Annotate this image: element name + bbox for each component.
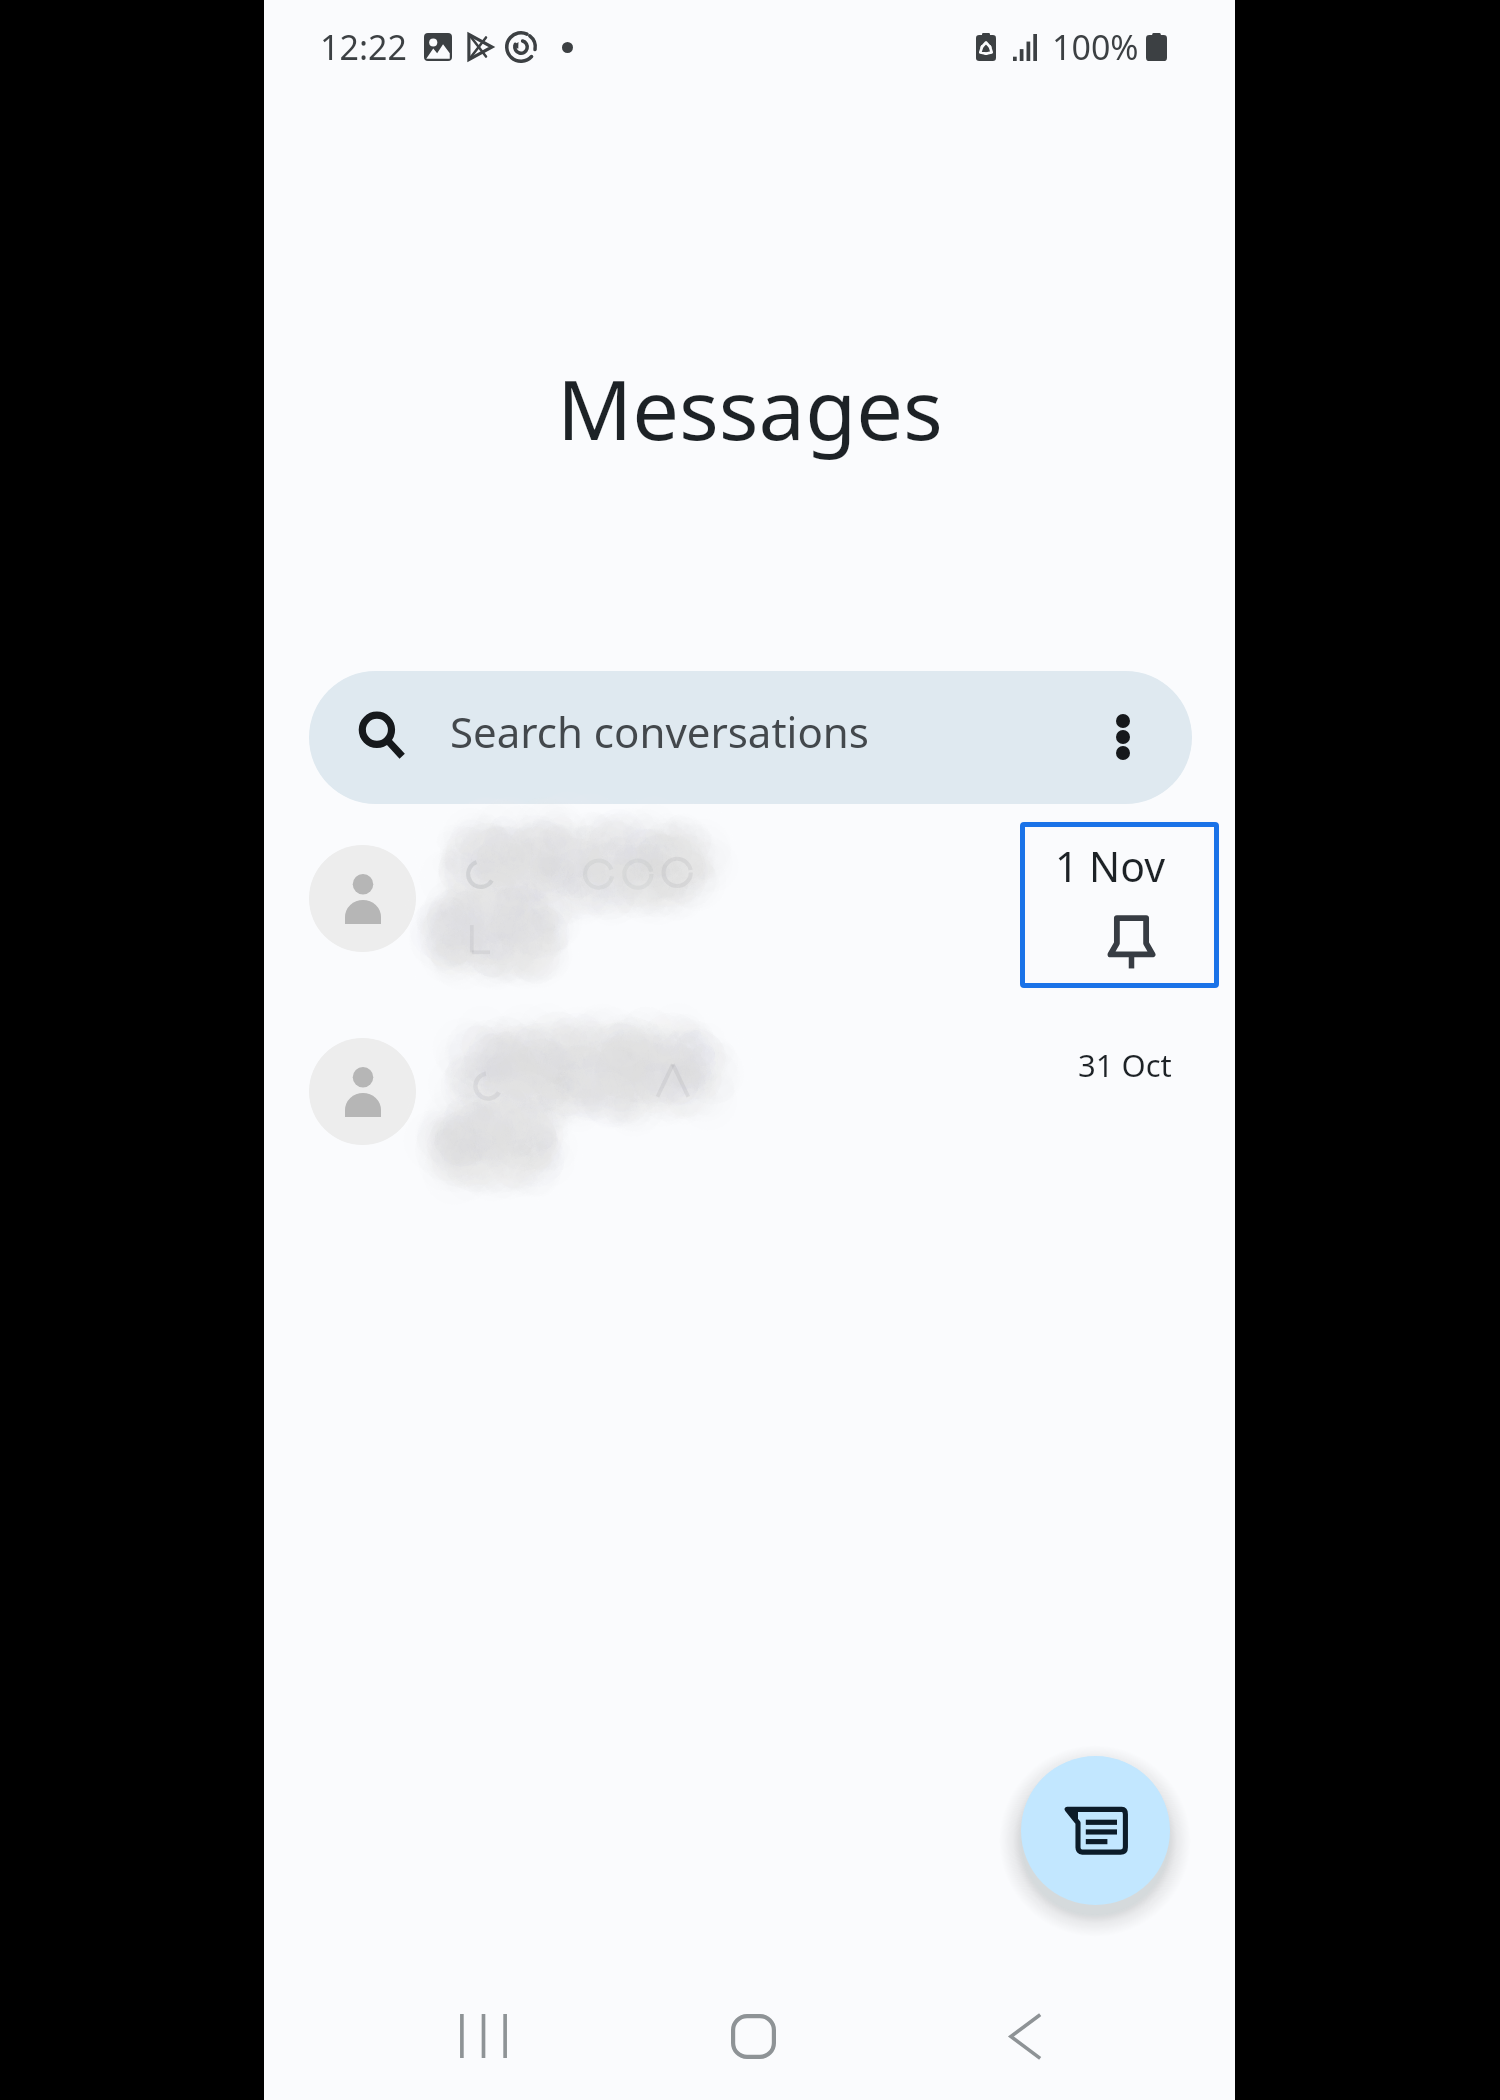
staticText: Search conversations — [450, 703, 869, 760]
button[interactable]: Recent apps — [433, 1986, 533, 2086]
staticText: 1 Nov — [1055, 838, 1166, 894]
button[interactable]: Pinned conversation, 1 Nov — [1020, 822, 1219, 988]
button[interactable]: More options — [1059, 673, 1187, 801]
staticText: 100% — [1052, 24, 1139, 70]
button[interactable]: Conversation — [264, 995, 1235, 1187]
staticText: 12:22 — [320, 24, 407, 70]
button[interactable]: Start chat — [1021, 1756, 1170, 1905]
button[interactable]: Home — [703, 1986, 803, 2086]
button[interactable]: Search conversations — [309, 671, 1192, 804]
button[interactable]: Conversation — [264, 802, 1235, 994]
staticText: 31 Oct — [1078, 1044, 1172, 1086]
staticText: Messages — [557, 351, 943, 464]
button[interactable]: Back — [974, 1986, 1074, 2086]
